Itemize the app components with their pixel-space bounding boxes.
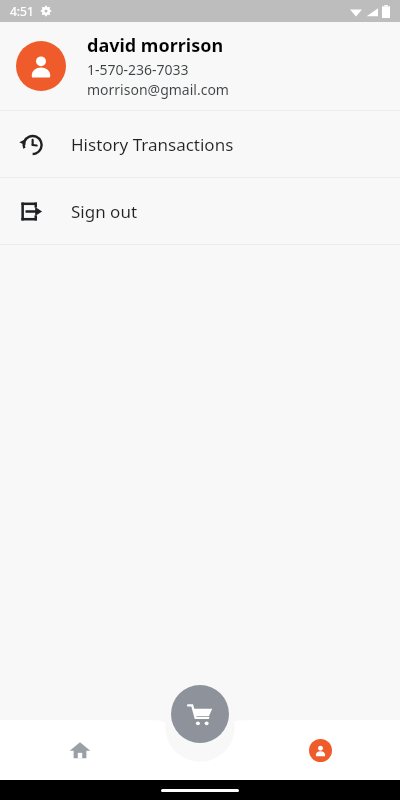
staticText: david morrison — [87, 33, 224, 58]
staticText: 1-570-236-7033 — [87, 60, 189, 79]
button[interactable]: david morrison — [0, 22, 400, 110]
staticText: 4:51 — [10, 3, 34, 19]
button[interactable]: Home — [0, 720, 160, 780]
button[interactable]: History Transactions — [0, 111, 400, 177]
button[interactable]: Cart — [171, 685, 229, 743]
button[interactable]: Profile — [240, 720, 400, 780]
staticText: History Transactions — [71, 133, 234, 156]
button[interactable]: Sign out — [0, 178, 400, 244]
staticText: Sign out — [71, 200, 138, 223]
staticText: morrison@gmail.com — [87, 80, 229, 99]
